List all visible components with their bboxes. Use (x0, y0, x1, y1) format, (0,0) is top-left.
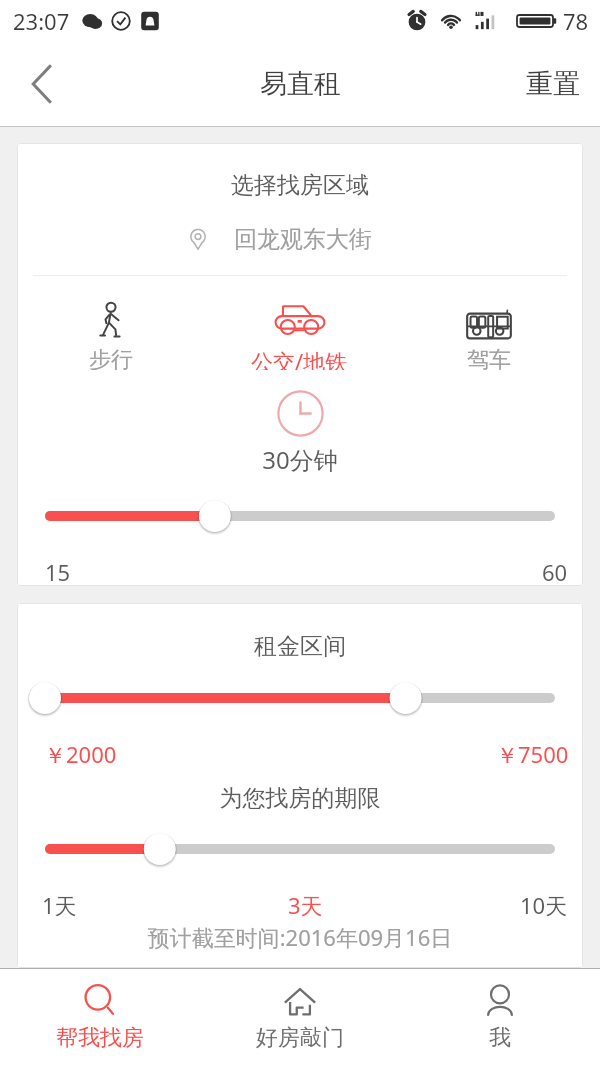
staticText: 78 (563, 6, 589, 36)
staticText: 驾车 (467, 346, 511, 370)
staticText: 10天 (520, 890, 568, 920)
staticText: 预计截至时间:2016年09月16日 (17, 922, 583, 952)
staticText: 23:07 (13, 6, 70, 36)
staticText: 我 (489, 1024, 511, 1052)
button[interactable]: 帮我找房 (0, 969, 200, 1067)
button[interactable]: 好房敲门 (200, 969, 400, 1067)
button[interactable]: 步行 (17, 294, 205, 370)
staticText: 回龙观东大街 (234, 225, 372, 254)
button[interactable]: 公交/地铁 (205, 294, 394, 370)
button[interactable]: 重置 (526, 42, 600, 126)
button[interactable]: Back (0, 42, 76, 126)
staticText: 帮我找房 (56, 1024, 144, 1052)
staticText: ￥7500 (496, 739, 569, 769)
staticText: 1天 (42, 890, 77, 920)
staticText: 步行 (89, 346, 133, 370)
staticText: 3天 (288, 890, 323, 920)
button[interactable]: Travel time slider (17, 497, 583, 535)
staticText: 15 (45, 557, 71, 586)
button[interactable]: 驾车 (394, 294, 583, 370)
staticText: 选择找房区域 (17, 171, 583, 200)
staticText: 30分钟 (17, 443, 583, 476)
staticText: 公交/地铁 (251, 346, 348, 370)
staticText: 60 (542, 557, 568, 586)
staticText: 租金区间 (17, 632, 583, 661)
button[interactable]: 我 (400, 969, 600, 1067)
staticText: 好房敲门 (256, 1024, 344, 1052)
staticText: 易直租 (260, 67, 341, 101)
staticText: 为您找房的期限 (17, 784, 583, 813)
button[interactable]: Search duration slider (17, 830, 583, 868)
staticText: ￥2000 (44, 739, 117, 769)
button[interactable]: 回龙观东大街 (17, 223, 583, 255)
staticText: 重置 (526, 67, 580, 101)
button[interactable]: Rent range slider (17, 679, 583, 717)
